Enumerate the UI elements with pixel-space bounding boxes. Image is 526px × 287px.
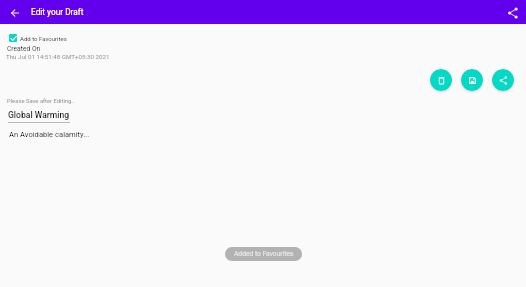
button[interactable]: Share (492, 69, 514, 91)
button[interactable]: Delete (430, 69, 452, 91)
staticText: Created On (7, 45, 41, 53)
staticText: An Avoidable calamity... (9, 130, 90, 139)
staticText: Please Save after Editing.. (7, 98, 75, 105)
staticText: Global Warming (8, 110, 70, 120)
button[interactable]: Share (503, 3, 522, 22)
staticText: Added to Favourites (234, 250, 294, 258)
button[interactable]: Added to Favourites (225, 247, 302, 261)
button[interactable]: Add to Favourites (9, 34, 67, 42)
staticText: Thu Jul 01 14:51:48 GMT+05:30 2021 (6, 53, 110, 60)
staticText: Add to Favourites (20, 35, 67, 42)
staticText: Edit your Draft (31, 7, 84, 17)
button[interactable]: Save (461, 69, 483, 91)
button[interactable]: Back (5, 3, 24, 22)
